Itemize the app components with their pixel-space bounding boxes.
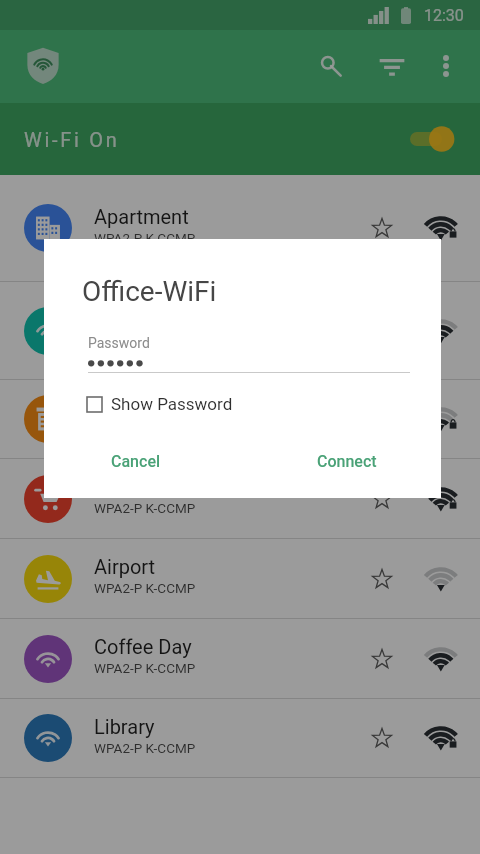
button[interactable]: Home — [0, 282, 480, 379]
staticText: WPA2-P K-CCMP — [94, 580, 196, 596]
staticText: WPA2-P K-CCMP — [94, 660, 196, 676]
button[interactable]: Connect — [307, 444, 387, 479]
staticText: Password — [88, 335, 150, 351]
staticText: WPA2-P K-CCMP — [94, 230, 196, 246]
staticText: WPA2-P K-CCMP — [94, 332, 196, 348]
button[interactable]: Save network — [360, 477, 404, 521]
button[interactable]: Save network — [360, 557, 404, 601]
button[interactable]: Wi-Fi On — [0, 103, 480, 175]
button[interactable]: Store — [0, 380, 480, 458]
button[interactable]: Search — [309, 44, 353, 88]
staticText: WPA2-P K-CCMP — [94, 740, 196, 756]
button[interactable]: Wi-Fi toggle — [402, 124, 458, 154]
button[interactable]: Coffee Day — [0, 619, 480, 698]
staticText: Show Password — [111, 394, 233, 414]
button[interactable]: Apartment — [0, 175, 480, 281]
button[interactable]: Save network — [360, 206, 404, 250]
button[interactable]: Library — [0, 699, 480, 777]
button[interactable]: More options — [424, 44, 468, 88]
button[interactable]: Market — [0, 459, 480, 538]
staticText: Library — [94, 715, 155, 738]
staticText: Wi-Fi On — [24, 128, 120, 151]
button[interactable]: Wi-Fi security app — [23, 45, 63, 85]
button[interactable]: Airport — [0, 539, 480, 618]
staticText: Office-WiFi — [82, 275, 217, 308]
staticText: Airport — [94, 555, 156, 578]
staticText: 12:30 — [424, 6, 464, 25]
staticText: Coffee Day — [94, 635, 192, 658]
staticText: WPA2-P K-CCMP — [94, 500, 196, 516]
staticText: Store — [94, 396, 141, 419]
button[interactable]: Save network — [360, 716, 404, 760]
button[interactable]: Show Password — [87, 394, 233, 414]
staticText: Connect — [317, 452, 377, 471]
staticText: Cancel — [111, 452, 161, 471]
button[interactable]: Sort — [370, 44, 414, 88]
staticText: Apartment — [94, 205, 189, 228]
button[interactable]: Cancel — [101, 444, 171, 479]
button[interactable]: Save network — [360, 637, 404, 681]
